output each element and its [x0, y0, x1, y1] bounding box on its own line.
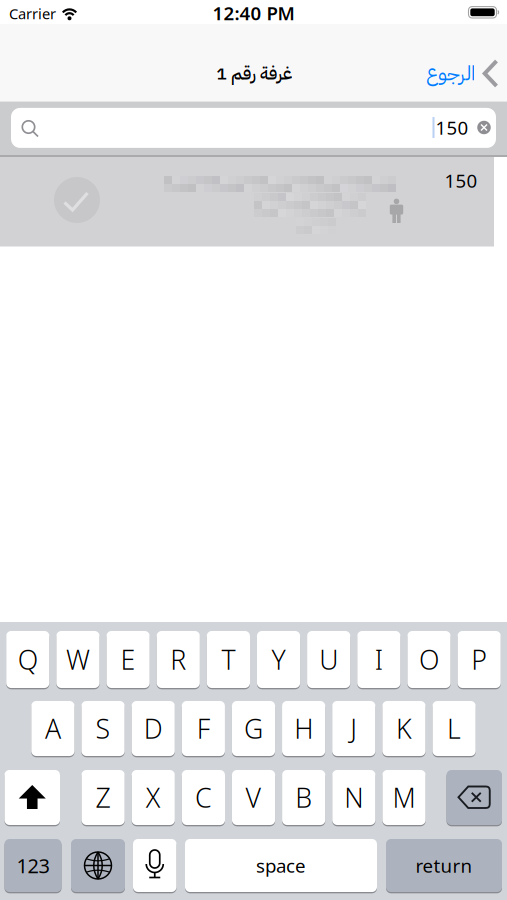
button[interactable]: V: [232, 770, 275, 825]
staticText: Q: [18, 642, 38, 677]
button[interactable]: 150: [0, 157, 494, 246]
button[interactable]: Q: [6, 631, 49, 688]
button[interactable]: O: [407, 631, 451, 688]
staticText: J: [350, 711, 357, 746]
button[interactable]: Z: [81, 770, 125, 825]
staticText: 123: [16, 852, 49, 879]
button[interactable]: P: [458, 631, 501, 688]
staticText: 150: [444, 168, 477, 193]
button[interactable]: I: [357, 631, 400, 688]
staticText: return: [415, 853, 472, 878]
button[interactable]: W: [56, 631, 100, 688]
staticText: T: [221, 642, 235, 677]
staticText: A: [45, 711, 61, 746]
staticText: M: [392, 780, 415, 815]
staticText: G: [244, 711, 263, 746]
staticText: U: [319, 642, 338, 677]
staticText: W: [66, 642, 90, 677]
button[interactable]: N: [332, 770, 375, 825]
button[interactable]: Y: [257, 631, 300, 688]
staticText: P: [471, 642, 487, 677]
button[interactable]: X: [132, 770, 175, 825]
button[interactable]: الرجوع: [425, 58, 498, 88]
staticText: C: [195, 780, 212, 815]
button[interactable]: F: [182, 701, 225, 756]
staticText: L: [447, 711, 461, 746]
staticText: E: [121, 642, 136, 677]
staticText: 12:40 PM: [212, 1, 294, 25]
staticText: Carrier: [9, 4, 56, 23]
button[interactable]: G: [232, 701, 275, 756]
button[interactable]: M: [382, 770, 426, 825]
button[interactable]: Dictate: [133, 839, 176, 892]
staticText: O: [419, 642, 439, 677]
staticText: I: [375, 642, 383, 677]
staticText: غرفة رقم 1: [215, 60, 291, 87]
staticText: B: [295, 780, 312, 815]
button[interactable]: D: [132, 701, 175, 756]
staticText: الرجوع: [425, 58, 474, 88]
staticText: 150: [435, 115, 468, 140]
staticText: V: [246, 780, 262, 815]
button[interactable]: J: [332, 701, 375, 756]
button[interactable]: T: [207, 631, 250, 688]
staticText: Z: [96, 780, 111, 815]
button[interactable]: U: [307, 631, 350, 688]
button[interactable]: Search: [11, 108, 496, 148]
staticText: R: [170, 642, 186, 677]
button[interactable]: A: [31, 701, 74, 756]
button[interactable]: Next keyboard: [71, 839, 125, 892]
button[interactable]: S: [81, 701, 125, 756]
button[interactable]: space: [185, 839, 377, 892]
button[interactable]: Shift: [4, 770, 60, 825]
button[interactable]: return: [386, 839, 502, 892]
staticText: X: [146, 780, 161, 815]
staticText: space: [256, 853, 306, 878]
staticText: S: [96, 711, 111, 746]
staticText: Y: [272, 642, 286, 677]
staticText: N: [344, 780, 363, 815]
staticText: F: [197, 711, 210, 746]
button[interactable]: K: [382, 701, 426, 756]
button[interactable]: 123: [4, 839, 61, 892]
button[interactable]: H: [282, 701, 325, 756]
button[interactable]: Delete: [446, 770, 502, 825]
button[interactable]: Clear text: [477, 120, 491, 134]
staticText: D: [144, 711, 163, 746]
button[interactable]: C: [182, 770, 225, 825]
button[interactable]: L: [432, 701, 476, 756]
button[interactable]: R: [157, 631, 200, 688]
staticText: K: [396, 711, 412, 746]
button[interactable]: E: [106, 631, 150, 688]
button[interactable]: B: [282, 770, 325, 825]
staticText: H: [294, 711, 313, 746]
